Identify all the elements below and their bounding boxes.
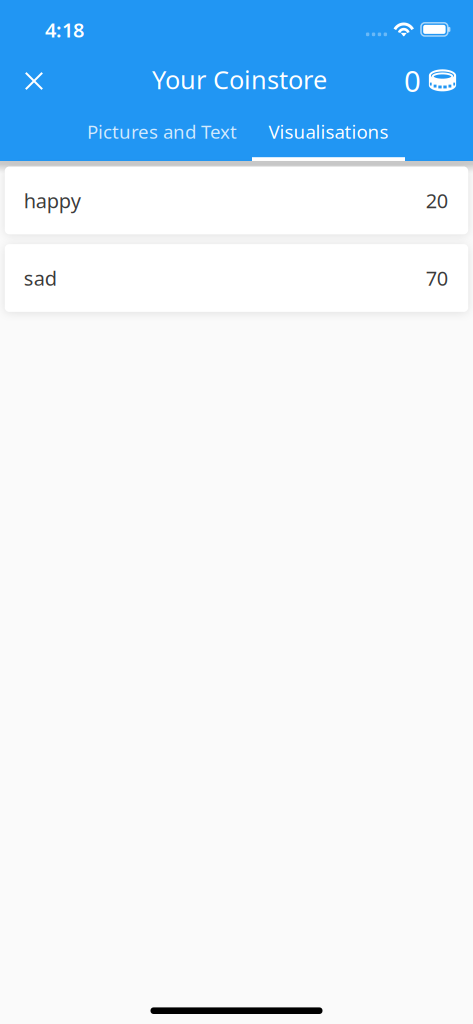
- button[interactable]: Pictures and Text: [72, 106, 252, 161]
- button[interactable]: Close: [10, 57, 58, 105]
- staticText: Your Coinstore: [152, 63, 327, 96]
- button[interactable]: sad: [5, 244, 468, 312]
- staticText: 0: [404, 61, 421, 100]
- staticText: Visualisations: [268, 119, 388, 144]
- staticText: 70: [426, 265, 448, 291]
- button[interactable]: Visualisations: [252, 106, 405, 161]
- staticText: 20: [426, 187, 448, 214]
- button[interactable]: Coin balance: [398, 56, 462, 104]
- button[interactable]: happy: [5, 166, 468, 234]
- staticText: sad: [24, 265, 57, 291]
- staticText: 4:18: [45, 16, 84, 43]
- staticText: Pictures and Text: [87, 119, 237, 144]
- staticText: happy: [24, 187, 81, 214]
